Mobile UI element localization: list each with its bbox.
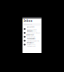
- staticText: Priya Raman: [27, 38, 36, 40]
- staticText: Flight Alert: [27, 30, 33, 32]
- staticText: Inbox: [24, 19, 33, 23]
- button[interactable]: Dev Digest: [22, 43, 41, 46]
- button[interactable]: Jonas Vogt: [22, 35, 41, 39]
- staticText: Five links you should read: [27, 44, 36, 47]
- staticText: Dev Digest: [27, 42, 34, 43]
- staticText: Jonas Vogt: [27, 34, 34, 36]
- staticText: Invoice for July hosting plan: [27, 36, 36, 40]
- button[interactable]: Priya Raman: [22, 39, 41, 43]
- staticText: Design review notes attached: [27, 28, 37, 32]
- staticText: Catching up later this week?: [27, 40, 40, 43]
- button[interactable]: Flight Alert: [22, 31, 41, 35]
- button[interactable]: Maya Chen: [22, 27, 41, 31]
- staticText: Maya Chen: [27, 26, 35, 28]
- staticText: AA 231 boarding at gate C12: [27, 32, 40, 36]
